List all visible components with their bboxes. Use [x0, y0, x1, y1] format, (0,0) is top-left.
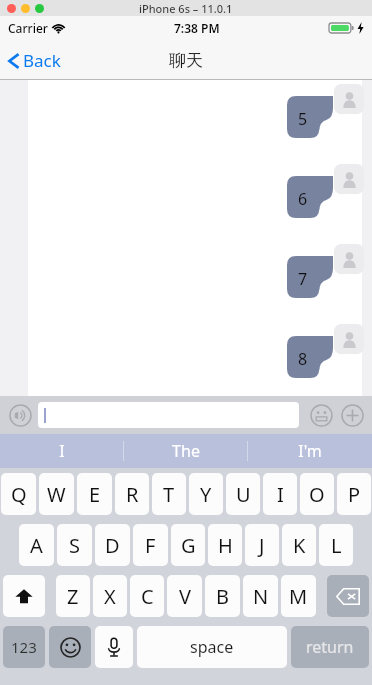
- staticText: Carrier: [8, 20, 48, 36]
- button[interactable]: C: [130, 575, 164, 617]
- button[interactable]: I'm: [248, 434, 372, 468]
- staticText: The: [172, 440, 200, 462]
- staticText: 123: [11, 637, 37, 657]
- button[interactable]: Contact avatar: [334, 244, 364, 274]
- staticText: J: [259, 532, 265, 559]
- button[interactable]: P: [337, 473, 371, 515]
- button[interactable]: O: [300, 473, 334, 515]
- button[interactable]: Contact avatar: [334, 164, 364, 194]
- staticText: X: [104, 583, 116, 610]
- button[interactable]: Voice message: [5, 400, 35, 430]
- button[interactable]: D: [95, 524, 130, 566]
- staticText: T: [163, 481, 175, 508]
- button[interactable]: J: [245, 524, 279, 566]
- button[interactable]: N: [243, 575, 278, 617]
- staticText: U: [236, 481, 251, 508]
- button[interactable]: 7: [287, 256, 333, 298]
- button[interactable]: A: [19, 524, 54, 566]
- staticText: 6: [298, 188, 308, 210]
- button[interactable]: L: [319, 524, 353, 566]
- button[interactable]: Emoji: [306, 400, 336, 430]
- button[interactable]: Add attachment: [337, 400, 367, 430]
- button[interactable]: B: [205, 575, 240, 617]
- staticText: C: [141, 583, 154, 610]
- button[interactable]: X: [93, 575, 127, 617]
- staticText: W: [47, 481, 66, 508]
- button[interactable]: 5: [287, 96, 333, 138]
- button[interactable]: space: [137, 626, 287, 668]
- button[interactable]: 6: [287, 176, 333, 218]
- button[interactable]: I: [0, 434, 124, 468]
- button[interactable]: Z: [56, 575, 90, 617]
- staticText: O: [309, 481, 325, 508]
- button[interactable]: Backspace: [327, 575, 369, 617]
- staticText: R: [126, 481, 139, 508]
- staticText: Back: [23, 49, 61, 72]
- button[interactable]: G: [171, 524, 205, 566]
- staticText: S: [69, 532, 80, 559]
- staticText: I'm: [298, 440, 322, 462]
- staticText: iPhone 6s – 11.0.1: [139, 1, 233, 16]
- button[interactable]: The: [124, 434, 248, 468]
- staticText: 8: [298, 348, 308, 370]
- button[interactable]: W: [39, 473, 74, 515]
- button[interactable]: F: [133, 524, 168, 566]
- button[interactable]: E: [77, 473, 112, 515]
- button[interactable]: V: [167, 575, 202, 617]
- staticText: I: [277, 481, 284, 508]
- staticText: A: [30, 532, 43, 559]
- button[interactable]: I: [263, 473, 297, 515]
- staticText: 5: [298, 108, 308, 130]
- staticText: E: [89, 481, 101, 508]
- staticText: H: [218, 532, 233, 559]
- button[interactable]: Dictation: [95, 626, 133, 668]
- button[interactable]: Y: [189, 473, 223, 515]
- button[interactable]: U: [226, 473, 260, 515]
- staticText: 聊天: [169, 50, 203, 71]
- staticText: Q: [11, 481, 27, 508]
- staticText: space: [190, 636, 234, 658]
- staticText: P: [348, 481, 361, 508]
- staticText: L: [331, 532, 342, 559]
- button[interactable]: Shift: [3, 575, 45, 617]
- button[interactable]: Contact avatar: [334, 84, 364, 114]
- staticText: F: [145, 532, 156, 559]
- button[interactable]: Back: [0, 44, 73, 77]
- button[interactable]: 8: [287, 336, 333, 378]
- button[interactable]: M: [281, 575, 316, 617]
- staticText: V: [179, 583, 191, 610]
- staticText: 7:38 PM: [174, 20, 220, 36]
- button[interactable]: 123: [3, 626, 45, 668]
- button[interactable]: Q: [1, 473, 36, 515]
- staticText: Z: [67, 583, 79, 610]
- button[interactable]: S: [57, 524, 92, 566]
- staticText: G: [181, 532, 196, 559]
- button[interactable]: return: [291, 626, 369, 668]
- staticText: M: [289, 583, 308, 610]
- staticText: 7: [298, 268, 308, 290]
- staticText: N: [253, 583, 269, 610]
- button[interactable]: Emoji keyboard: [49, 626, 91, 668]
- button[interactable]: H: [208, 524, 242, 566]
- button[interactable]: R: [115, 473, 149, 515]
- staticText: K: [293, 532, 306, 559]
- button[interactable]: K: [282, 524, 316, 566]
- staticText: D: [105, 532, 120, 559]
- staticText: Y: [200, 481, 212, 508]
- staticText: I: [59, 440, 65, 462]
- button[interactable]: T: [152, 473, 186, 515]
- button[interactable]: [38, 402, 299, 428]
- button[interactable]: Contact avatar: [334, 324, 364, 354]
- staticText: return: [306, 636, 354, 658]
- staticText: B: [216, 583, 229, 610]
